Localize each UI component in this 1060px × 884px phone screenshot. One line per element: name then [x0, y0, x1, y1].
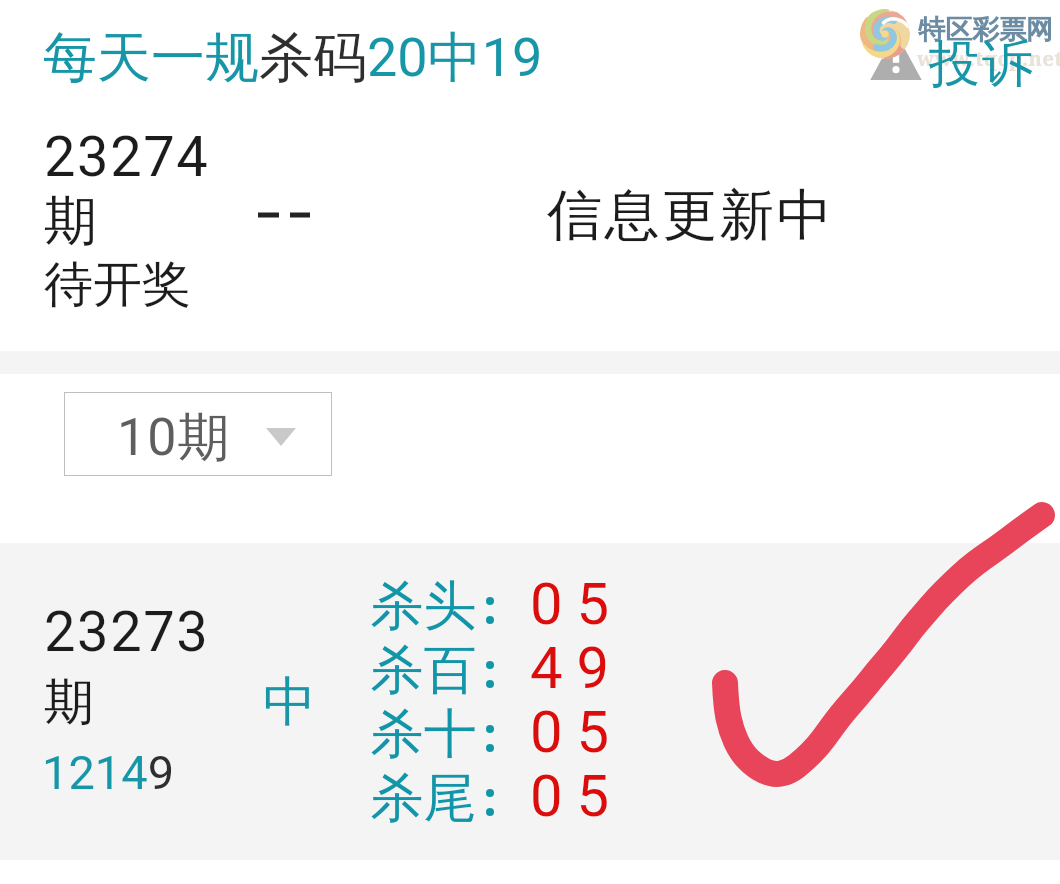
staticText: 中: [263, 669, 316, 736]
staticText: 05: [530, 762, 624, 830]
staticText: 23273: [44, 599, 210, 665]
button[interactable]: 投诉 report a complaint: [852, 4, 1058, 96]
staticText: 49: [530, 634, 624, 702]
staticText: 期: [44, 188, 97, 255]
staticText: 信息更新中: [546, 181, 833, 250]
staticText: 待开奖: [44, 254, 191, 316]
button[interactable]: 10期: [64, 392, 332, 476]
staticText: 期: [44, 671, 94, 734]
staticText: 23274: [44, 124, 210, 190]
staticText: 杀百: [370, 637, 477, 704]
staticText: 12149: [42, 745, 175, 800]
staticText: 杀尾: [370, 765, 477, 832]
button[interactable]: 23274: [0, 100, 1060, 350]
button[interactable]: 23273: [0, 543, 1060, 860]
staticText: 杀十: [370, 701, 477, 768]
staticText: 10期: [117, 405, 231, 471]
staticText: www.tqcp.net: [917, 45, 1060, 72]
staticText: 每天一规杀码20中19: [43, 24, 543, 92]
staticText: 05: [530, 570, 624, 638]
button[interactable]: 每天一规杀码20中19: [30, 8, 560, 94]
staticText: 特区彩票网: [918, 13, 1053, 47]
staticText: 投诉: [928, 32, 1034, 96]
staticText: 杀头: [370, 573, 477, 640]
staticText: 05: [530, 698, 624, 766]
